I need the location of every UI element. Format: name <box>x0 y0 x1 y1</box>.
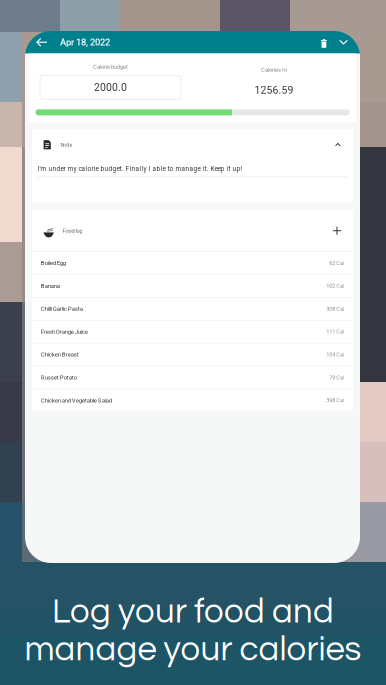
staticText: Note <box>60 141 72 148</box>
button[interactable]: Fresh Orange Juice <box>32 320 353 343</box>
button[interactable]: More options <box>333 31 354 53</box>
staticText: Chicken Breast <box>41 351 79 358</box>
staticText: Fresh Orange Juice <box>41 328 88 335</box>
staticText: Chilli Garlic Pasta <box>41 305 83 312</box>
staticText: Apr 18, 2022 <box>60 37 110 48</box>
staticText: 79 Cal <box>329 374 344 381</box>
button[interactable]: Collapse note <box>332 140 344 150</box>
staticText: manage your calories <box>24 632 361 667</box>
button[interactable]: Chilli Garlic Pasta <box>32 298 353 320</box>
staticText: Chicken and Vegetable Salad <box>41 397 112 404</box>
staticText: 398 Cal <box>326 397 344 404</box>
staticText: Calorie budget <box>93 63 128 70</box>
button[interactable]: Russet Potato <box>32 366 353 389</box>
button[interactable]: Boiled Egg <box>32 252 353 275</box>
staticText: 104 Cal <box>326 351 344 358</box>
staticText: 111 Cal <box>326 328 344 335</box>
staticText: 308 Cal <box>326 305 344 312</box>
staticText: Russet Potato <box>41 374 77 381</box>
button[interactable]: Chicken Breast <box>32 343 353 366</box>
staticText: 62 Cal <box>329 260 344 266</box>
staticText: 2000.0 <box>94 81 127 94</box>
staticText: I'm under my calorie budget. Finally I a… <box>37 165 242 172</box>
staticText: Banana <box>41 282 60 289</box>
staticText: Calories In <box>261 66 287 73</box>
staticText: Boiled Egg <box>41 259 66 266</box>
button[interactable]: 2000.0 <box>40 76 181 99</box>
staticText: Log your food and <box>52 594 334 630</box>
staticText: 1256.59 <box>254 84 293 96</box>
button[interactable]: Back <box>30 31 53 53</box>
button[interactable]: Add food <box>330 224 344 238</box>
staticText: 102 Cal <box>326 283 344 289</box>
button[interactable]: Chicken and Vegetable Salad <box>32 389 353 412</box>
button[interactable]: Delete <box>315 31 333 53</box>
staticText: Food log <box>62 227 82 234</box>
button[interactable]: Banana <box>32 275 353 298</box>
